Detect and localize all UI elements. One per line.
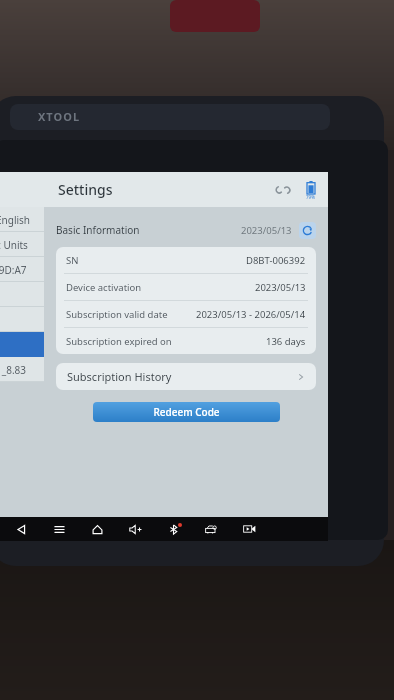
button[interactable]: English [0,207,44,232]
button[interactable]: Battery 79 percent [300,178,320,202]
staticText: Basic Information [56,223,140,237]
staticText: 79% [306,194,315,200]
button[interactable]: Subscription expired on [56,328,316,354]
button[interactable]: Home [78,517,116,541]
staticText: Subscription expired on [66,335,172,348]
button[interactable]: SN [56,247,316,273]
staticText: D8BT-006392 [246,254,306,267]
button[interactable]: Subscription valid date [56,301,316,327]
staticText: Settings [58,180,113,199]
staticText: 2023/05/13 - 2026/05/14 [196,308,306,321]
staticText: SN [66,254,79,267]
button[interactable]: Volume up [116,517,154,541]
button[interactable]: Diagnostics [192,517,230,541]
staticText: 2023/05/13 [241,224,292,237]
staticText: Subscription History [67,369,172,384]
staticText: Subscription valid date [66,308,168,321]
button[interactable]: Subscription History [56,363,316,390]
button[interactable]: Device activation [56,274,316,300]
button[interactable]: :9D:A7 [0,257,44,282]
staticText: c Units [0,238,28,252]
staticText: Redeem Code [153,405,220,419]
button[interactable]: Menu [40,517,78,541]
staticText: :9D:A7 [0,263,27,277]
button[interactable]: 1_8.83 [0,357,44,382]
button[interactable]: Connection [272,179,294,201]
button[interactable]: Back [2,517,40,541]
staticText: 1_8.83 [0,363,26,377]
button[interactable] [0,307,44,332]
button[interactable] [0,282,44,307]
button[interactable]: Bluetooth [154,517,192,541]
button[interactable]: Refresh [299,222,316,239]
staticText: English [0,213,31,227]
button[interactable]: Screen record [230,517,268,541]
staticText: 136 days [266,335,306,348]
staticText: XTOOL [38,109,81,124]
staticText: Device activation [66,281,142,294]
staticText: 2023/05/13 [255,281,306,294]
button[interactable]: Redeem Code [93,402,280,422]
button[interactable]: c Units [0,232,44,257]
